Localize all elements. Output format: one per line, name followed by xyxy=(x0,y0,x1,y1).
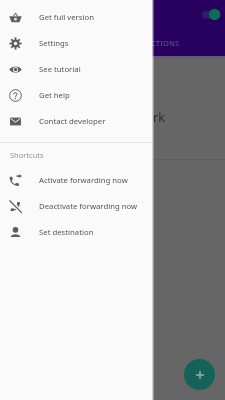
button[interactable]: Activate forwarding now xyxy=(0,167,152,193)
staticText: Get help xyxy=(39,90,70,101)
button[interactable]: Set destination xyxy=(0,219,152,245)
staticText: Get full version xyxy=(39,12,94,23)
staticText: Shortcuts xyxy=(10,150,44,160)
button[interactable]: Contact developer xyxy=(0,108,152,134)
button[interactable]: Enable service xyxy=(198,4,222,25)
staticText: Contact developer xyxy=(39,116,106,127)
button[interactable]: Deactivate forwarding now xyxy=(0,193,152,219)
button[interactable]: See tutorial xyxy=(0,56,152,82)
button[interactable]: Get help xyxy=(0,82,152,108)
staticText: Set destination xyxy=(39,227,94,238)
button[interactable]: Add xyxy=(184,359,215,390)
staticText: See tutorial xyxy=(39,64,81,75)
staticText: Deactivate forwarding now xyxy=(39,201,138,212)
staticText: Mobile network xyxy=(73,109,165,126)
staticText: Settings xyxy=(39,38,69,49)
button[interactable]: Get full version xyxy=(0,4,152,30)
staticText: ACTIONS xyxy=(146,38,180,48)
staticText: Activate forwarding now xyxy=(39,175,128,186)
button[interactable]: Settings xyxy=(0,30,152,56)
